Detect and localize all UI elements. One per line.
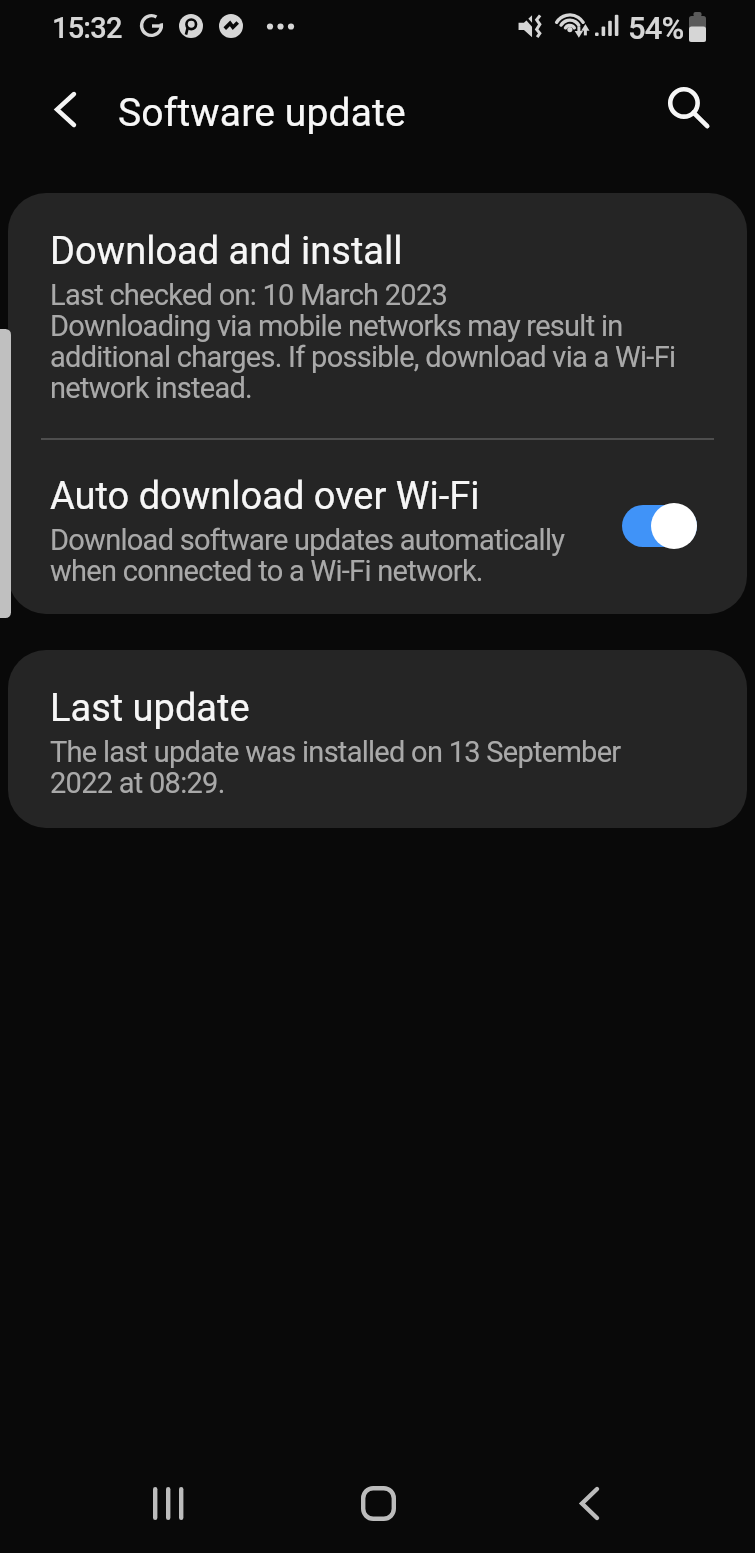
button[interactable]: Auto download over Wi-Fi, on: [622, 501, 697, 551]
staticText: The last update was installed on 13 Sept…: [50, 735, 621, 800]
button[interactable]: Navigate up: [33, 77, 97, 141]
staticText: 54%: [628, 10, 684, 46]
button[interactable]: Home: [328, 1453, 428, 1553]
button[interactable]: Back: [539, 1453, 639, 1553]
button[interactable]: Auto download over Wi-Fi: [8, 440, 747, 614]
button[interactable]: Search: [655, 74, 723, 142]
button[interactable]: Last update: [8, 650, 747, 828]
staticText: Download and install: [50, 229, 403, 274]
staticText: Last update: [50, 686, 250, 731]
button[interactable]: Recent apps: [118, 1453, 218, 1553]
staticText: 15:32: [52, 11, 122, 45]
staticText: Download software updates automatically …: [50, 523, 565, 588]
staticText: Software update: [118, 90, 406, 136]
staticText: Auto download over Wi-Fi: [50, 474, 480, 519]
staticText: Last checked on: 10 March 2023 Downloadi…: [50, 278, 676, 405]
button[interactable]: Download and install: [8, 193, 747, 436]
